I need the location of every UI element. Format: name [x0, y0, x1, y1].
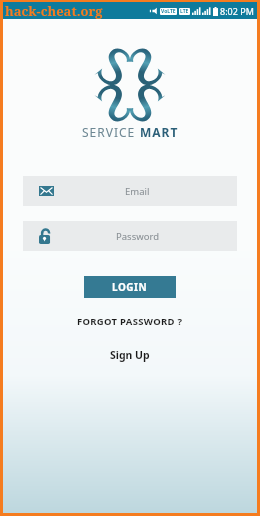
button[interactable]: Sign Up — [110, 348, 150, 362]
staticText: hack-cheat.org — [5, 2, 103, 19]
button[interactable]: LOGIN — [84, 276, 176, 298]
button[interactable]: FORGOT PASSWORD ? — [77, 315, 183, 328]
staticText: LOGIN — [112, 280, 148, 294]
staticText: VoLTE — [161, 8, 176, 15]
staticText: SERVICE — [82, 124, 136, 140]
button[interactable]: Password — [23, 221, 237, 251]
staticText: 8:02 PM — [220, 5, 254, 17]
staticText: Password — [116, 230, 159, 243]
staticText: MART — [140, 124, 179, 140]
staticText: LTE — [180, 8, 189, 15]
button[interactable]: Email — [23, 176, 237, 206]
staticText: Email — [125, 185, 150, 198]
